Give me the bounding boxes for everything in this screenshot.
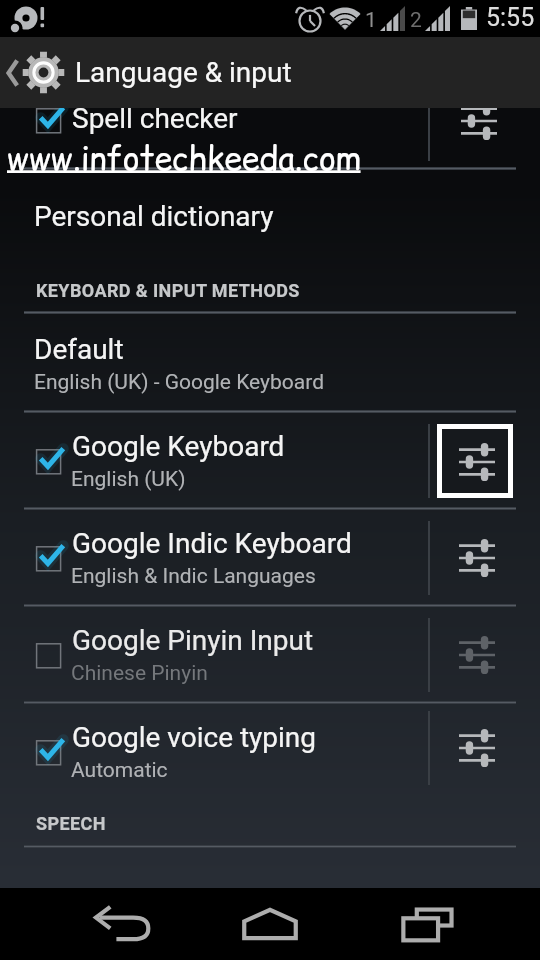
staticText: Default	[34, 333, 124, 366]
staticText: Spell checker	[72, 102, 238, 135]
button[interactable]: Recent apps	[388, 894, 468, 954]
button[interactable]: Back	[82, 894, 162, 954]
staticText: 5:55	[486, 3, 535, 32]
staticText: Chinese Pinyin	[71, 661, 208, 686]
staticText: English & Indic Languages	[71, 564, 316, 589]
staticText: 2	[410, 8, 422, 33]
staticText: English (UK)	[71, 467, 186, 492]
button[interactable]: Default	[0, 314, 540, 412]
staticText: Google Pinyin Input	[72, 624, 314, 657]
button[interactable]: Google Keyboard	[0, 413, 540, 509]
button[interactable]: Spell checker	[0, 92, 540, 169]
button[interactable]: Google Pinyin Input	[0, 607, 540, 703]
staticText: English (UK) - Google Keyboard	[34, 370, 324, 395]
staticText: Google voice typing	[72, 721, 317, 754]
button[interactable]: Google voice typing	[0, 704, 540, 792]
button[interactable]: Navigate up	[0, 37, 540, 108]
staticText: 1	[365, 8, 377, 33]
button[interactable]: Personal dictionary	[0, 170, 540, 250]
staticText: Language & input	[75, 56, 292, 89]
staticText: Personal dictionary	[34, 200, 274, 233]
button[interactable]: Spell checker settings	[446, 88, 512, 154]
button[interactable]: Home	[230, 894, 310, 954]
button[interactable]: Google Indic Keyboard	[0, 510, 540, 606]
staticText: Automatic	[71, 758, 168, 783]
staticText: Google Indic Keyboard	[72, 527, 352, 560]
button[interactable]: Google Indic Keyboard settings	[444, 525, 510, 591]
button[interactable]: Google Keyboard settings	[442, 429, 508, 493]
button[interactable]: Google voice typing settings	[444, 715, 510, 781]
staticText: www.infotechkeeda.com	[7, 136, 361, 181]
staticText: KEYBOARD & INPUT METHODS	[36, 280, 300, 301]
staticText: SPEECH	[36, 813, 106, 834]
staticText: Google Keyboard	[72, 430, 285, 463]
button[interactable]: Google Pinyin Input settings	[444, 622, 510, 688]
